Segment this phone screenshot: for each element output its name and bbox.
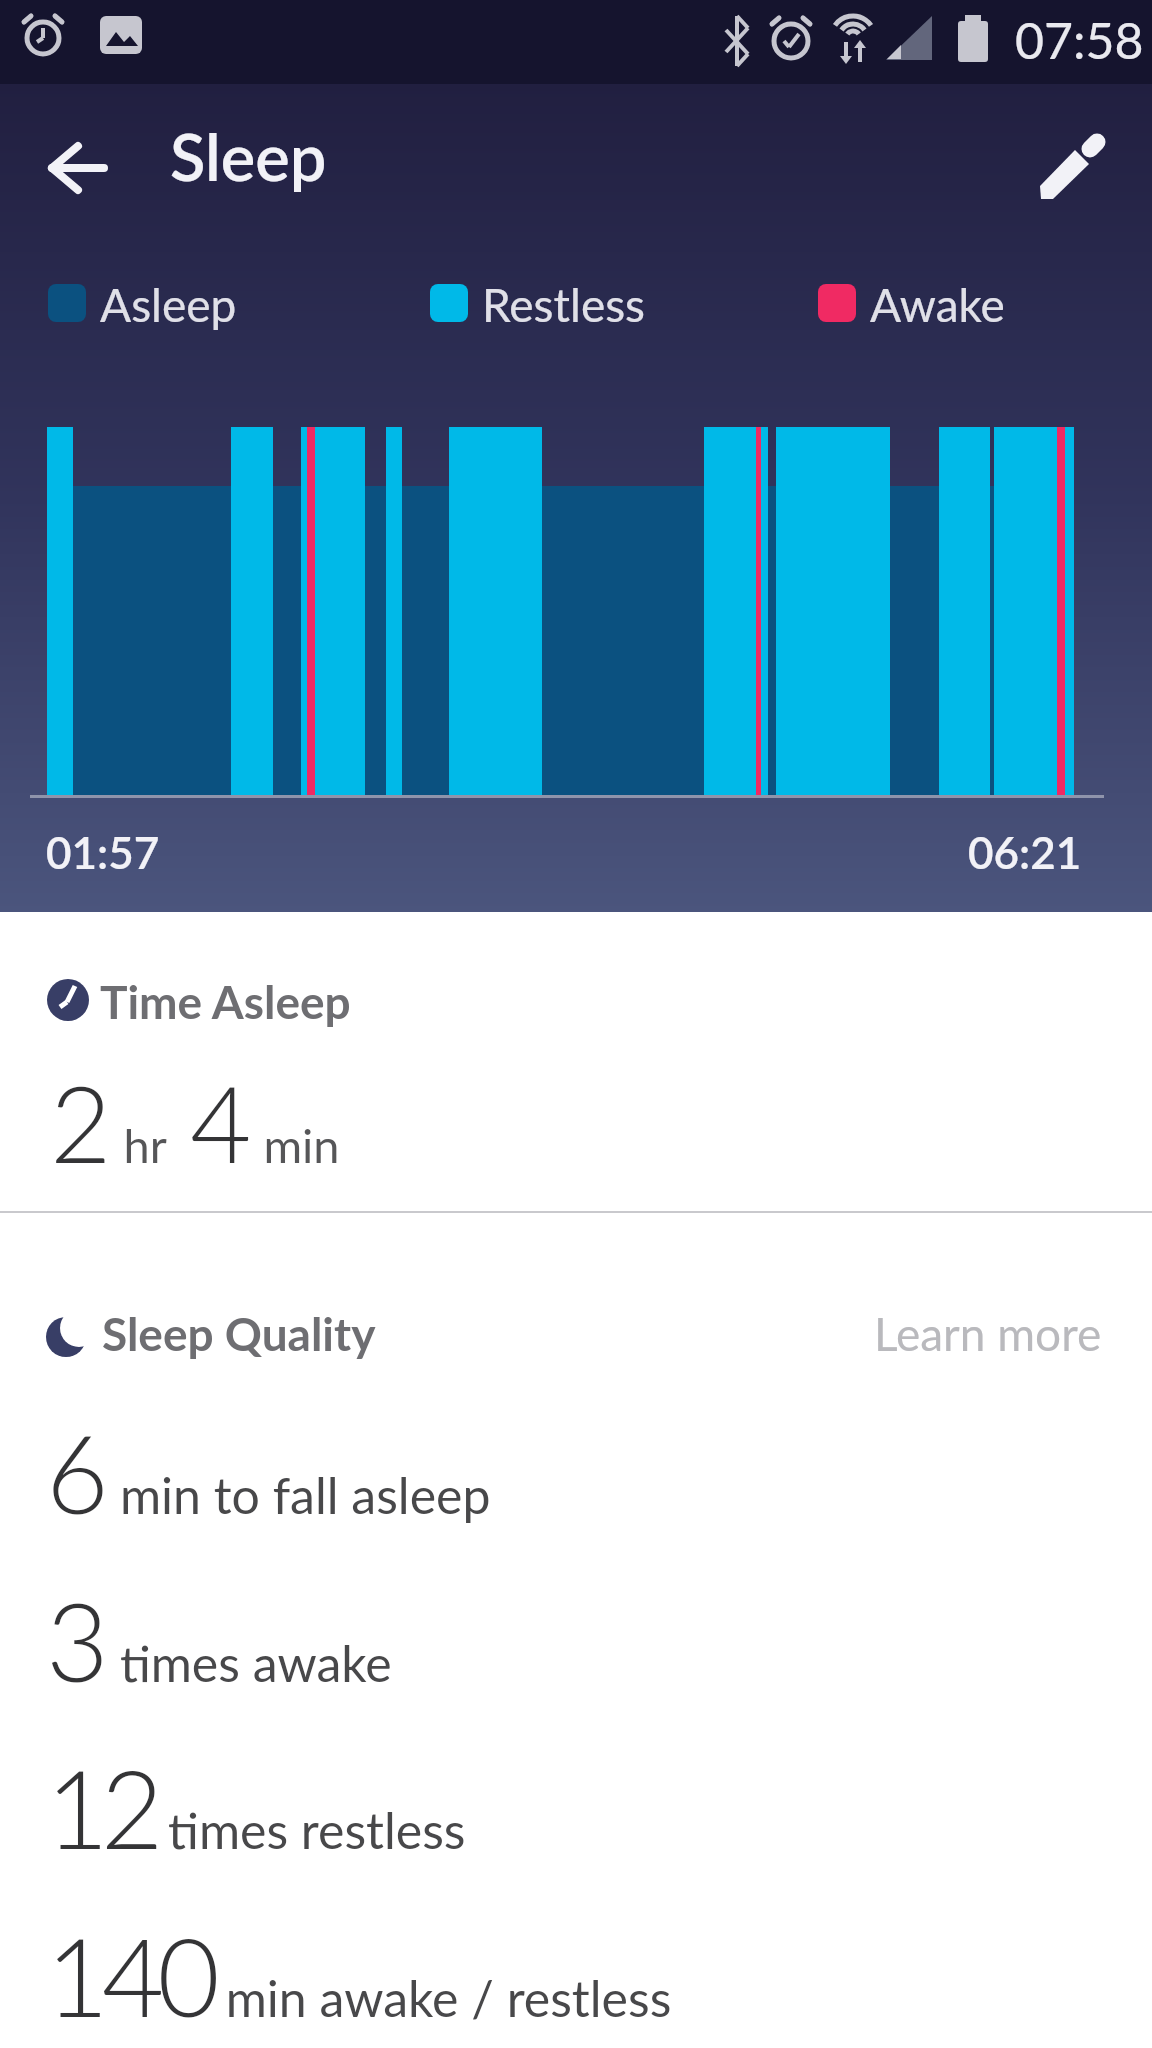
staticText: 06:21 (968, 826, 1082, 879)
staticText: 3 times awake (46, 1575, 392, 1705)
staticText: 6 min to fall asleep (46, 1407, 491, 1537)
staticText: 140 min awake / restless (46, 1910, 672, 2040)
staticText: Time Asleep (100, 974, 351, 1029)
staticText: Asleep (100, 277, 237, 332)
staticText: 2 hr 4 min (50, 1058, 340, 1185)
staticText: Restless (482, 277, 646, 332)
staticText: 12 times restless (46, 1742, 466, 1872)
button[interactable] (1024, 120, 1124, 220)
staticText: 01:57 (46, 826, 160, 879)
staticText: 07:58 (1015, 10, 1144, 70)
staticText: Awake (870, 277, 1005, 332)
button[interactable]: Learn more (860, 1290, 1110, 1360)
staticText: Sleep Quality (102, 1306, 376, 1361)
staticText: Sleep (170, 117, 327, 195)
staticText: Learn more (874, 1306, 1102, 1361)
button[interactable] (28, 120, 128, 220)
